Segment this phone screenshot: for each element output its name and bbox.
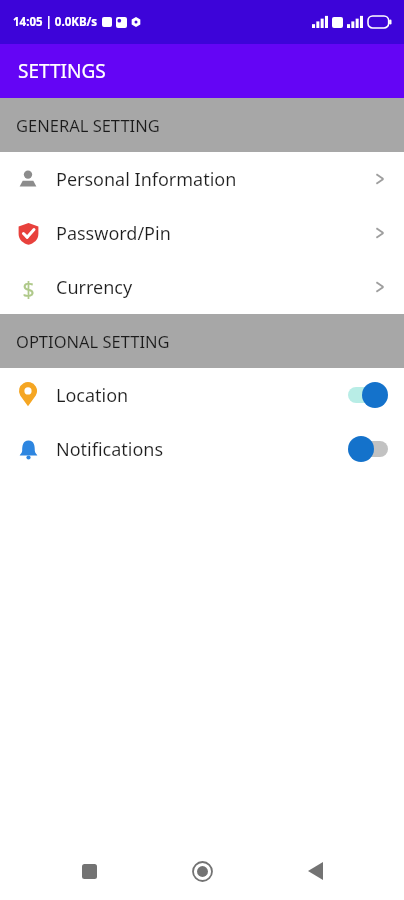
button[interactable]: Password/Pin — [0, 206, 404, 260]
button[interactable]: Toggle on — [348, 382, 388, 408]
staticText: GENERAL SETTING — [16, 114, 160, 136]
staticText: Currency — [56, 275, 374, 300]
button[interactable]: $ — [0, 260, 404, 314]
staticText: Location — [56, 383, 348, 408]
staticText: Notifications — [56, 437, 348, 462]
button[interactable]: Location — [0, 368, 404, 422]
button[interactable]: Recent apps — [65, 847, 113, 895]
button[interactable]: Home — [178, 847, 226, 895]
staticText: 14:05 | 0.0KB/s — [13, 14, 98, 30]
button[interactable]: Toggle off — [348, 436, 388, 462]
staticText: $ — [22, 275, 35, 299]
staticText: OPTIONAL SETTING — [16, 330, 170, 352]
button[interactable]: Notifications — [0, 422, 404, 476]
staticText: SETTINGS — [18, 58, 106, 84]
staticText: Personal Information — [56, 167, 374, 192]
staticText: Password/Pin — [56, 221, 374, 246]
button[interactable]: Personal Information — [0, 152, 404, 206]
button[interactable]: Back — [291, 847, 339, 895]
